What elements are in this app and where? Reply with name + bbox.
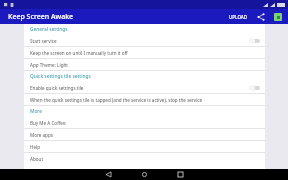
- button[interactable]: Home: [126, 169, 162, 180]
- button[interactable]: Enable quick settings tile: [24, 82, 265, 93]
- staticText: When the quick settings tile is tapped (…: [30, 97, 203, 103]
- button[interactable]: Share: [255, 11, 266, 22]
- staticText: General settings: [30, 26, 68, 33]
- staticText: Enable quick settings tile: [30, 85, 249, 91]
- button[interactable]: Start service: [24, 35, 265, 46]
- staticText: Help: [30, 144, 41, 150]
- button[interactable]: Screenshot: [272, 11, 283, 22]
- staticText: UPLOAD: [229, 14, 248, 20]
- button[interactable]: Buy Me A Coffee: [24, 117, 265, 128]
- button[interactable]: UPLOAD: [228, 12, 249, 22]
- button[interactable]: Back: [90, 169, 126, 180]
- button[interactable]: About: [24, 153, 265, 164]
- staticText: Buy Me A Coffee: [30, 120, 66, 126]
- button[interactable]: More apps: [24, 129, 265, 140]
- staticText: More: [30, 108, 43, 115]
- button[interactable]: Keep the screen on until I manually turn…: [24, 47, 265, 58]
- staticText: About: [30, 156, 44, 162]
- staticText: Keep Screen Awake: [8, 12, 74, 22]
- staticText: Quick settings tile settings: [30, 73, 91, 80]
- staticText: App Theme: Light: [30, 62, 68, 68]
- button[interactable]: Recent apps: [162, 169, 198, 180]
- staticText: Keep the screen on until I manually turn…: [30, 50, 128, 56]
- button[interactable]: When the quick settings tile is tapped (…: [24, 94, 265, 105]
- staticText: Start service: [30, 38, 249, 44]
- staticText: More apps: [30, 132, 53, 138]
- button[interactable]: Help: [24, 141, 265, 152]
- button[interactable]: App Theme: Light: [24, 59, 265, 70]
